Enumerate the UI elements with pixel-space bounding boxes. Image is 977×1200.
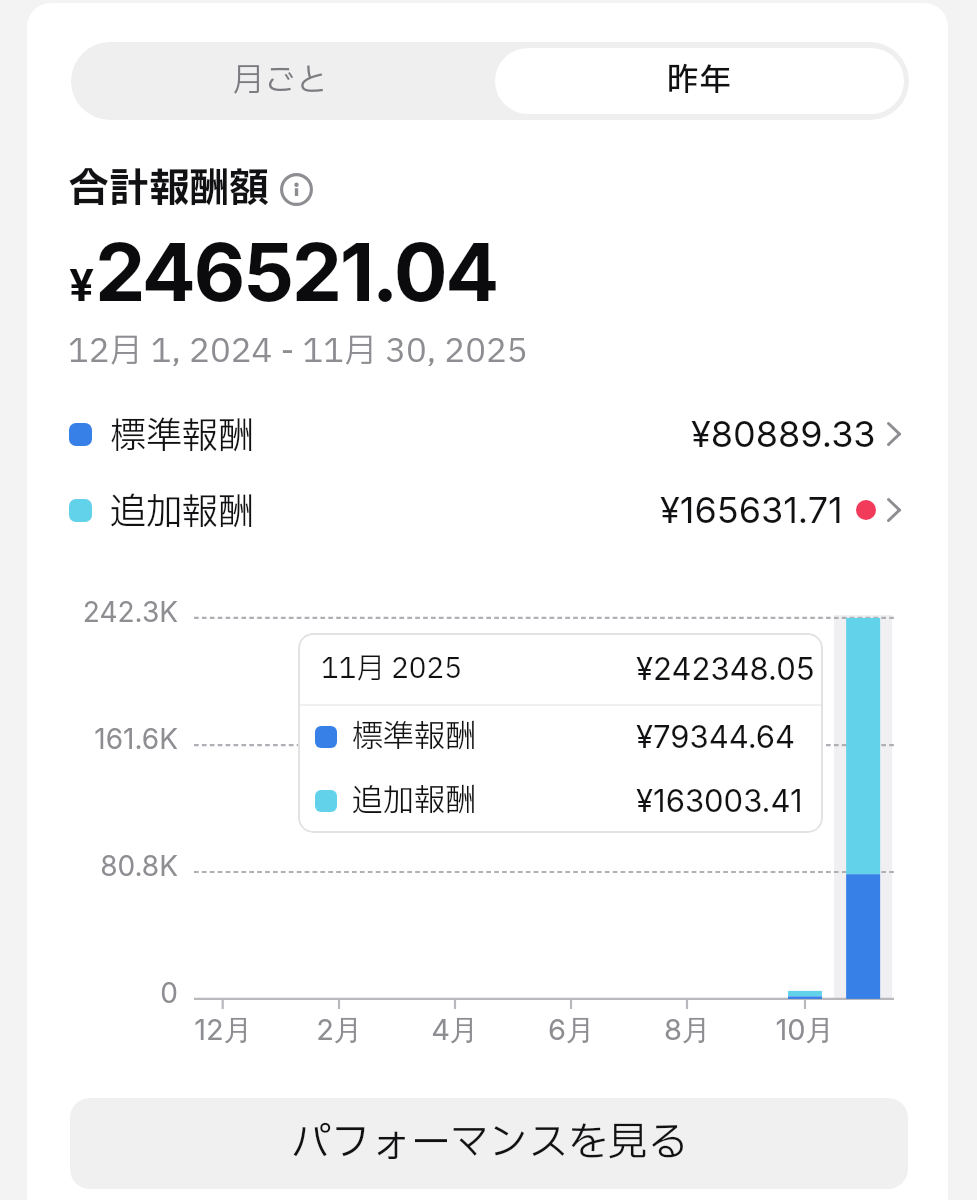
button[interactable]: 昨年 bbox=[495, 48, 904, 114]
button[interactable]: 標準報酬 bbox=[69, 410, 901, 458]
button[interactable]: 追加報酬 bbox=[69, 486, 901, 534]
staticText: 10月 bbox=[775, 1012, 835, 1049]
staticText: ¥ bbox=[69, 258, 95, 311]
staticText: 12月 bbox=[194, 1012, 253, 1049]
staticText: 標準報酬 bbox=[352, 714, 476, 760]
staticText: 昨年 bbox=[667, 57, 732, 105]
button[interactable]: 月ごと bbox=[71, 42, 490, 120]
staticText: 242.3K bbox=[82, 595, 178, 629]
staticText: ¥79344.64 bbox=[636, 718, 796, 756]
staticText: 合計報酬額 bbox=[69, 160, 269, 220]
staticText: 追加報酬 bbox=[110, 486, 255, 534]
staticText: ¥165631.71 bbox=[660, 488, 843, 532]
staticText: 161.6K bbox=[94, 722, 178, 756]
staticText: ¥80889.33 bbox=[691, 412, 876, 456]
button[interactable]: 合計報酬額について bbox=[280, 173, 313, 206]
staticText: パフォーマンスを見る bbox=[291, 1114, 688, 1174]
staticText: ¥163003.41 bbox=[636, 782, 803, 820]
staticText: 6月 bbox=[548, 1012, 595, 1049]
button[interactable]: パフォーマンスを見る bbox=[70, 1098, 908, 1189]
staticText: 11月 2025 bbox=[321, 648, 462, 690]
staticText: 246521.04 bbox=[95, 223, 498, 320]
staticText: 8月 bbox=[664, 1012, 711, 1049]
staticText: 追加報酬 bbox=[352, 778, 476, 824]
staticText: 標準報酬 bbox=[110, 410, 255, 458]
staticText: ¥242348.05 bbox=[636, 650, 815, 688]
staticText: 2月 bbox=[316, 1012, 363, 1049]
staticText: 4月 bbox=[431, 1012, 479, 1049]
staticText: 0 bbox=[160, 976, 178, 1010]
staticText: 月ごと bbox=[232, 57, 329, 105]
staticText: 12月 1, 2024 - 11月 30, 2025 bbox=[68, 327, 528, 376]
staticText: 80.8K bbox=[100, 849, 178, 883]
